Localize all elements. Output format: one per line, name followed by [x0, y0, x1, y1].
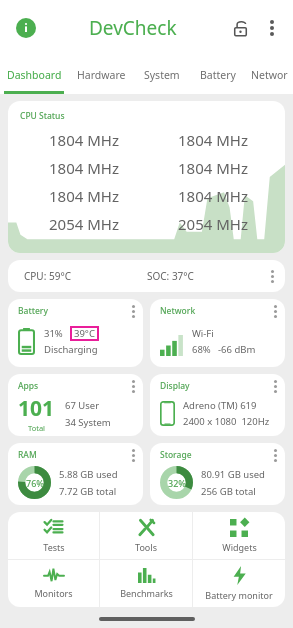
staticText: 1804 MHz	[178, 130, 248, 150]
staticText: Dashboard	[7, 68, 62, 82]
button[interactable]: RAM	[8, 443, 143, 505]
button[interactable]: Battery monitor	[193, 560, 285, 607]
staticText: Apps	[18, 380, 39, 392]
staticText: Tests	[43, 541, 65, 553]
staticText: Storage	[160, 449, 192, 461]
staticText: Battery	[200, 68, 236, 82]
button[interactable]: More options	[126, 446, 140, 464]
staticText: Benchmarks	[120, 587, 173, 599]
staticText: Battery	[18, 305, 48, 317]
staticText: 34 System	[65, 416, 111, 429]
button[interactable]: Battery	[8, 299, 143, 367]
button[interactable]: More options	[268, 446, 282, 464]
staticText: 1804 MHz	[178, 158, 248, 178]
button[interactable]: Display	[150, 374, 285, 436]
staticText: 5.88 GB used	[59, 468, 118, 481]
staticText: Total	[28, 423, 46, 433]
staticText: 32%	[168, 477, 186, 489]
button[interactable]: CPU Status	[8, 101, 285, 253]
button[interactable]: More options	[126, 302, 140, 320]
staticText: 39°C	[74, 327, 95, 340]
button[interactable]: More options	[265, 267, 279, 285]
button[interactable]: More options	[126, 377, 140, 395]
staticText: 76%	[26, 477, 44, 489]
button[interactable]: Network	[150, 299, 285, 367]
button[interactable]: Dashboard	[0, 56, 68, 94]
button[interactable]: Hardware	[68, 56, 134, 94]
button[interactable]: Battery	[190, 56, 246, 94]
staticText: Discharging	[44, 343, 98, 356]
staticText: 2054 MHz	[49, 214, 119, 234]
staticText: 1804 MHz	[178, 186, 248, 206]
staticText: Tools	[135, 541, 157, 553]
staticText: DevCheck	[89, 15, 177, 41]
staticText: Wi-Fi	[192, 327, 214, 340]
button[interactable]: Tools	[100, 512, 192, 559]
button[interactable]: Benchmarks	[100, 560, 192, 607]
staticText: 67 User	[65, 399, 100, 412]
button[interactable]: Apps	[8, 374, 143, 436]
staticText: System	[144, 68, 180, 82]
button[interactable]: Widgets	[193, 512, 285, 559]
staticText: 1804 MHz	[49, 186, 119, 206]
button[interactable]: Tests	[8, 512, 99, 559]
staticText: Battery monitor	[205, 589, 273, 601]
staticText: 7.72 GB total	[59, 485, 117, 498]
button[interactable]: Menu	[257, 13, 287, 43]
button[interactable]: Storage	[150, 443, 285, 505]
staticText: RAM	[18, 449, 37, 461]
staticText: 101	[18, 394, 55, 423]
staticText: CPU: 59°C	[24, 269, 71, 283]
staticText: 256 GB total	[201, 485, 256, 498]
staticText: 31%	[44, 327, 63, 340]
staticText: 2054 MHz	[178, 214, 248, 234]
staticText: 68%	[192, 343, 211, 356]
staticText: -66 dBm	[218, 343, 256, 356]
staticText: Network	[160, 305, 196, 317]
button[interactable]: Unlock	[223, 11, 257, 45]
staticText: Networ	[251, 68, 288, 82]
staticText: CPU Status	[20, 110, 65, 122]
staticText: 1804 MHz	[49, 130, 119, 150]
button[interactable]: CPU: 59°C	[8, 260, 285, 292]
button[interactable]: More options	[268, 377, 282, 395]
button[interactable]: System	[134, 56, 190, 94]
button[interactable]: Monitors	[8, 560, 99, 607]
staticText: Adreno (TM) 619	[183, 399, 257, 412]
staticText: SOC: 37°C	[147, 269, 194, 283]
button[interactable]: More options	[268, 302, 282, 320]
staticText: 2400 x 1080 120Hz	[183, 415, 270, 428]
staticText: 80.91 GB used	[201, 468, 265, 481]
staticText: 1804 MHz	[49, 158, 119, 178]
button[interactable]: Networ	[246, 56, 293, 94]
staticText: Widgets	[222, 541, 257, 553]
button[interactable]: Info	[10, 12, 42, 44]
staticText: Display	[160, 380, 190, 392]
staticText: Hardware	[77, 68, 126, 82]
staticText: Monitors	[34, 587, 73, 599]
